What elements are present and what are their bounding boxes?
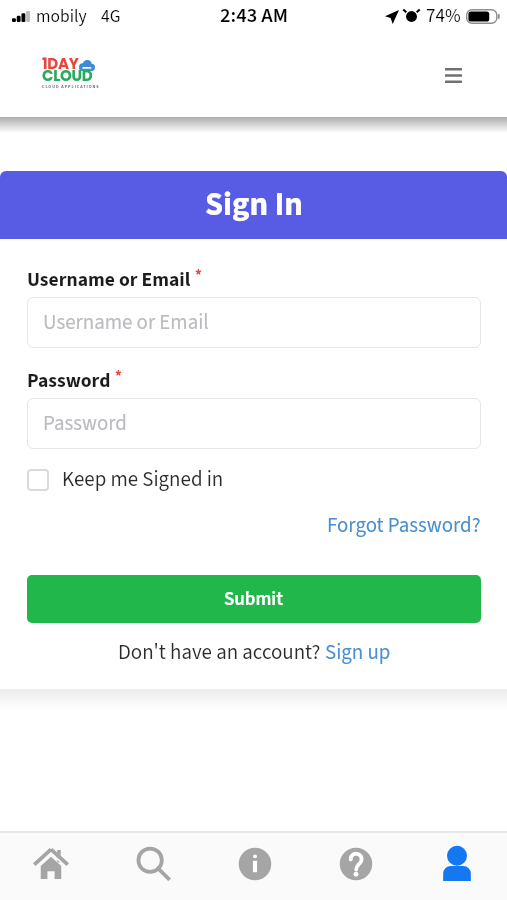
button[interactable]: Submit [27, 575, 481, 623]
staticText: CLOUD [42, 65, 93, 86]
staticText: Username or Email [27, 266, 191, 294]
staticText: 74% [426, 3, 461, 30]
staticText: * [115, 366, 122, 387]
staticText: * [195, 265, 202, 286]
staticText: Keep me Signed in [62, 465, 224, 495]
button[interactable]: Username or Email [27, 297, 481, 348]
staticText: 4G [101, 4, 121, 29]
staticText: Username or Email [43, 308, 209, 338]
button[interactable]: Menu [435, 57, 471, 93]
button[interactable]: Info [204, 833, 305, 900]
staticText: Don't have an account? [118, 638, 325, 668]
button[interactable]: Profile [406, 833, 507, 900]
button[interactable]: Sign up [325, 638, 391, 668]
staticText: Password [27, 367, 111, 395]
button[interactable]: Forgot Password? [327, 511, 481, 541]
staticText: mobily [36, 4, 87, 29]
button[interactable]: Password [27, 398, 481, 449]
staticText: 1DAY [42, 53, 79, 74]
button[interactable]: Search [102, 833, 204, 900]
staticText: Password [43, 409, 127, 439]
button[interactable]: Keep me Signed in [27, 465, 224, 495]
button[interactable]: Help [305, 833, 406, 900]
button[interactable]: Home [0, 833, 102, 900]
staticText: CLOUD APPLICATIONS [42, 84, 106, 90]
staticText: 2:43 AM [220, 1, 288, 30]
staticText: Sign In [205, 182, 303, 228]
staticText: Submit [224, 586, 284, 613]
